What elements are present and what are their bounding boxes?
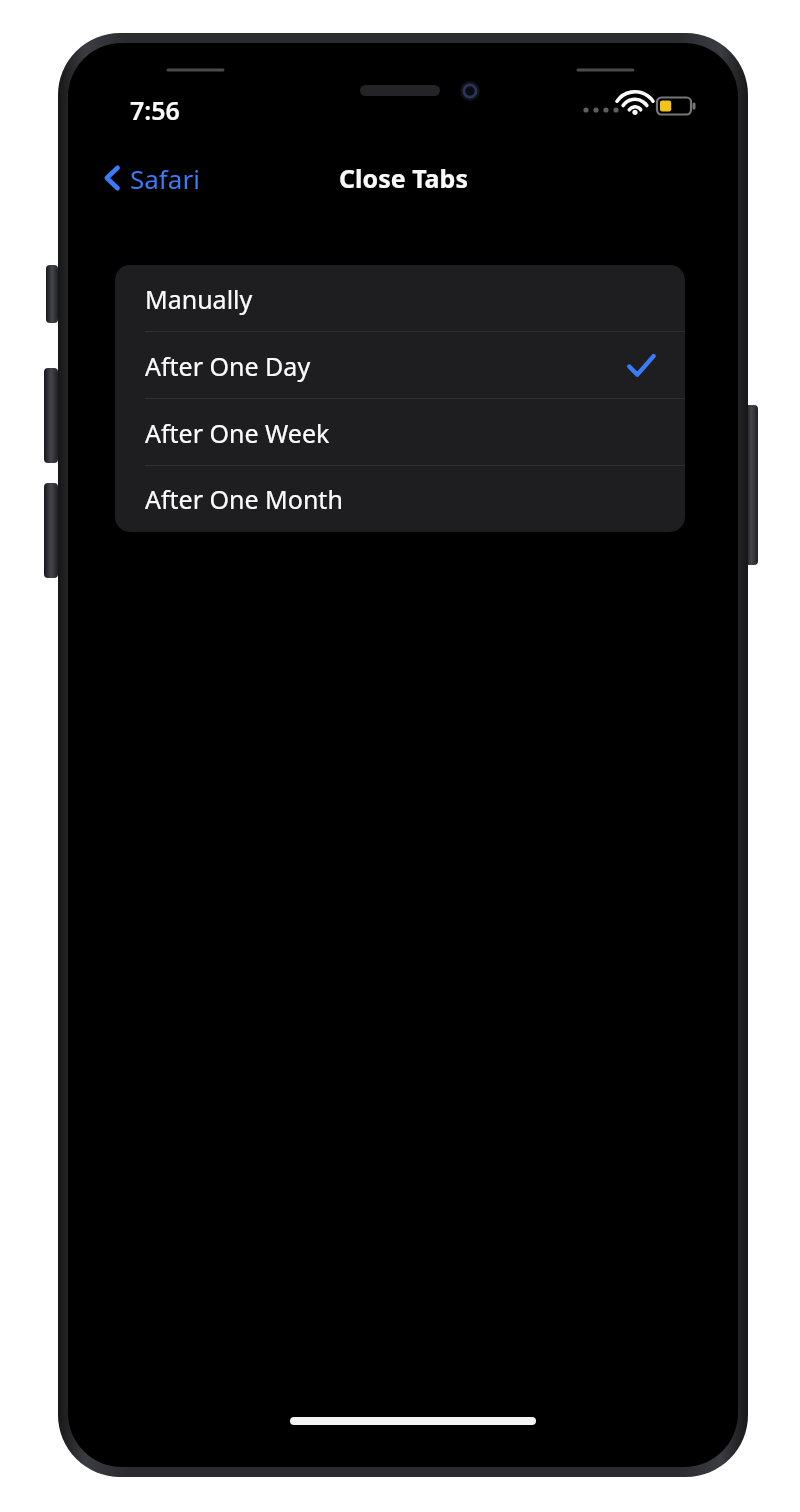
other: Selected bbox=[627, 353, 655, 379]
button[interactable]: After One Day bbox=[115, 332, 685, 399]
staticText: Safari bbox=[130, 161, 200, 196]
button[interactable]: After One Month bbox=[115, 466, 685, 532]
staticText: After One Day bbox=[145, 349, 311, 383]
staticText: 7:56 bbox=[130, 93, 180, 127]
staticText: Manually bbox=[145, 282, 253, 316]
button[interactable]: Manually bbox=[115, 265, 685, 332]
button[interactable]: After One Week bbox=[115, 399, 685, 466]
staticText: After One Week bbox=[145, 416, 330, 450]
staticText: After One Month bbox=[145, 482, 343, 516]
button[interactable]: Safari bbox=[96, 153, 206, 203]
staticText: Close Tabs bbox=[339, 161, 468, 195]
